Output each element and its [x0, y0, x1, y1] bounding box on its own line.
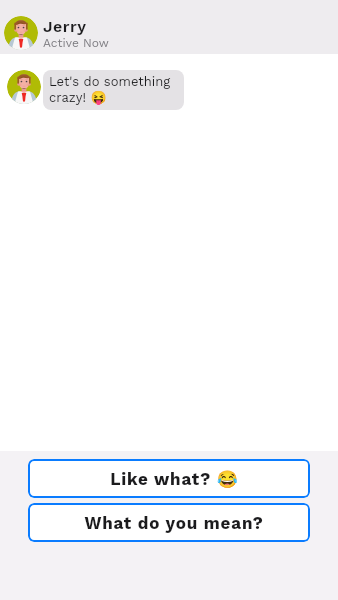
- button[interactable]: What do you mean?: [28, 503, 310, 542]
- staticText: Active Now: [43, 36, 109, 50]
- staticText: Jerry: [43, 17, 87, 36]
- staticText: Like what? 😂: [110, 469, 239, 489]
- staticText: Let's do something crazy! 😝: [49, 74, 176, 105]
- staticText: What do you mean?: [84, 513, 264, 533]
- button[interactable]: Like what? 😂: [28, 459, 310, 498]
- button[interactable]: Jerry: [0, 0, 338, 54]
